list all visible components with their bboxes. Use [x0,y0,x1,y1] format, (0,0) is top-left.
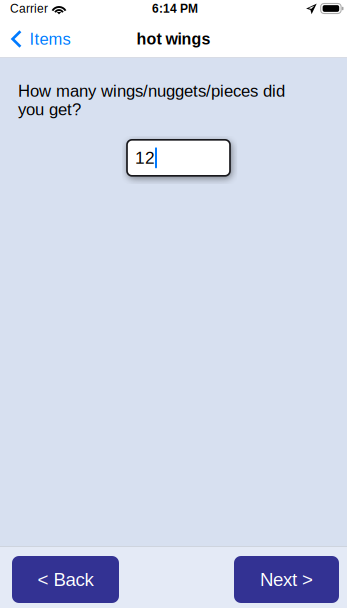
staticText: hot wings [136,30,210,48]
staticText: How many wings/nuggets/pieces did you ge… [18,82,285,119]
button[interactable]: Items [0,25,78,53]
staticText: Carrier [10,2,48,15]
button[interactable]: < Back [12,556,119,603]
button[interactable]: Next > [234,556,339,603]
staticText: 6:14 PM [152,2,198,15]
staticText: < Back [37,569,93,590]
staticText: Next > [260,569,313,590]
staticText: 12 [135,148,155,168]
staticText: Items [29,30,70,48]
